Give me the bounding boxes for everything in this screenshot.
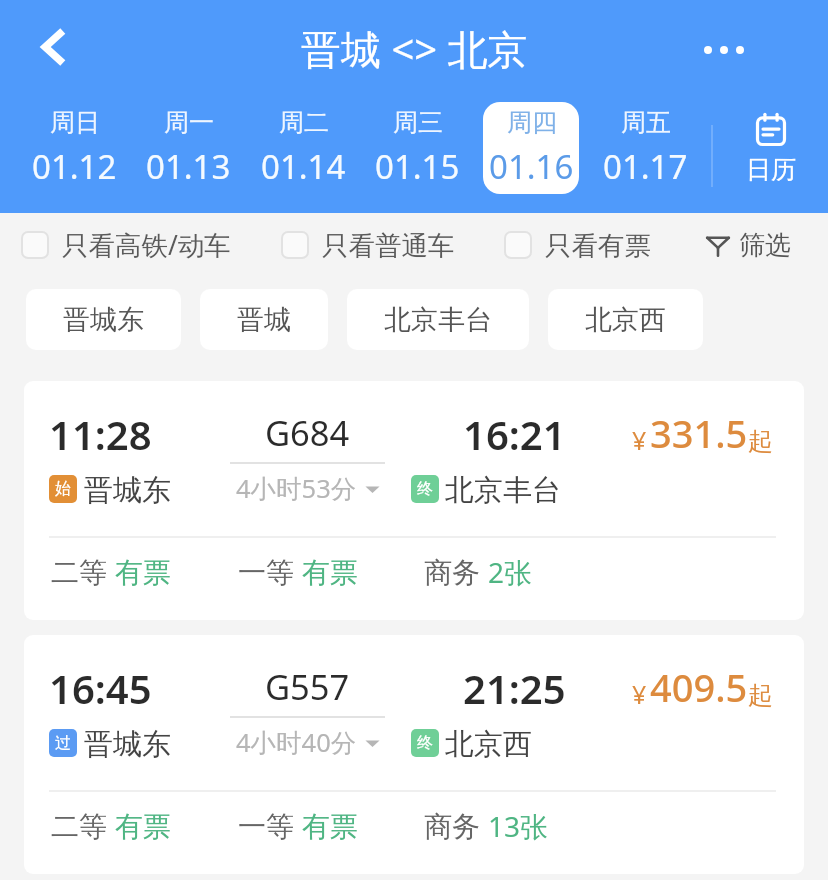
staticText: 一等: [238, 809, 294, 844]
staticText: 商务: [424, 809, 480, 844]
staticText: 晋城东: [84, 726, 171, 763]
staticText: 北京丰台: [445, 472, 561, 509]
staticText: 4小时53分: [236, 471, 357, 506]
staticText: 起: [748, 680, 773, 711]
staticText: 只看高铁/动车: [62, 227, 231, 263]
staticText: 只看普通车: [322, 229, 455, 262]
staticText: 有票: [115, 555, 171, 590]
staticText: G557: [265, 663, 350, 710]
staticText: 01.16: [489, 144, 574, 189]
button[interactable]: 周二: [255, 102, 351, 194]
staticText: G684: [265, 409, 350, 456]
button[interactable]: 只看普通车: [281, 214, 455, 276]
staticText: 始: [55, 479, 71, 499]
staticText: 周四: [507, 107, 557, 138]
staticText: 筛选: [739, 229, 791, 262]
button[interactable]: 晋城: [200, 289, 328, 350]
button[interactable]: 晋城东: [26, 289, 181, 350]
staticText: 日历: [746, 154, 796, 185]
staticText: 16:45: [49, 661, 152, 715]
button[interactable]: Back: [23, 16, 85, 78]
staticText: 4小时40分: [236, 725, 357, 760]
staticText: 有票: [302, 555, 358, 590]
button[interactable]: 周三: [369, 102, 465, 194]
staticText: 01.14: [261, 144, 346, 189]
button[interactable]: 周一: [140, 102, 236, 194]
staticText: 终: [417, 733, 433, 753]
staticText: 晋城 <> 北京: [301, 21, 528, 76]
staticText: 晋城东: [84, 472, 171, 509]
button[interactable]: 北京丰台: [347, 289, 529, 350]
staticText: 有票: [302, 809, 358, 844]
button[interactable]: 筛选: [706, 214, 791, 276]
staticText: 周二: [279, 107, 329, 138]
staticText: 北京丰台: [384, 303, 492, 337]
button[interactable]: 只看有票: [504, 214, 651, 276]
staticText: 331.5: [650, 407, 748, 459]
staticText: 终: [417, 479, 433, 499]
button[interactable]: 周五: [597, 102, 693, 194]
staticText: 01.13: [146, 144, 231, 189]
button[interactable]: 日历: [721, 97, 821, 213]
staticText: ¥: [632, 423, 647, 457]
staticText: 二等: [51, 809, 107, 844]
staticText: 周一: [164, 107, 214, 138]
staticText: 11:28: [49, 407, 152, 461]
staticText: 北京西: [445, 726, 532, 763]
staticText: 01.12: [32, 144, 117, 189]
staticText: 01.15: [375, 144, 460, 189]
staticText: 16:21: [463, 407, 566, 461]
staticText: 一等: [238, 555, 294, 590]
staticText: 2张: [488, 553, 533, 591]
button[interactable]: 11:28: [24, 381, 804, 620]
staticText: 二等: [51, 555, 107, 590]
staticText: 周五: [621, 107, 671, 138]
staticText: 周三: [393, 107, 443, 138]
staticText: 晋城东: [63, 303, 144, 337]
staticText: 409.5: [650, 661, 748, 713]
staticText: 21:25: [463, 661, 566, 715]
staticText: 起: [748, 426, 773, 457]
button[interactable]: More options: [694, 20, 754, 80]
staticText: 周日: [50, 107, 100, 138]
staticText: 13张: [488, 807, 549, 845]
button[interactable]: 周四: [483, 102, 579, 194]
staticText: 01.17: [603, 144, 688, 189]
staticText: 有票: [115, 809, 171, 844]
button[interactable]: 周日: [26, 102, 122, 194]
button[interactable]: 16:45: [24, 635, 804, 874]
button[interactable]: 北京西: [548, 289, 703, 350]
button[interactable]: 只看高铁/动车: [21, 214, 231, 276]
staticText: 晋城: [237, 303, 291, 337]
staticText: 北京西: [585, 303, 666, 337]
staticText: 过: [55, 733, 71, 753]
staticText: 商务: [424, 555, 480, 590]
staticText: 只看有票: [545, 229, 651, 262]
staticText: ¥: [632, 677, 647, 711]
